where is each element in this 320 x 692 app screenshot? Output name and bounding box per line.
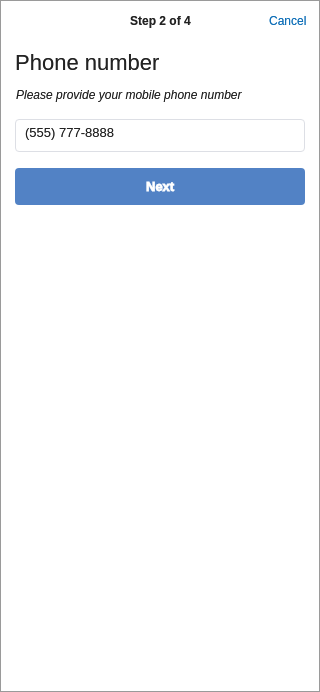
staticText: Next xyxy=(146,179,175,194)
staticText: Phone number xyxy=(15,50,160,75)
staticText: (555) 777-8888 xyxy=(25,125,114,140)
staticText: Cancel xyxy=(269,14,307,27)
button[interactable]: Cancel xyxy=(254,4,320,37)
button[interactable]: Next xyxy=(15,168,305,205)
staticText: Please provide your mobile phone number xyxy=(16,88,242,101)
staticText: Step 2 of 4 xyxy=(130,14,191,27)
staticText: (555) 777-8888 xyxy=(25,125,114,140)
staticText: Cancel xyxy=(269,14,307,27)
button[interactable]: (555) 777-8888 xyxy=(15,119,305,152)
staticText: Step 2 of 4 xyxy=(130,14,191,27)
staticText: Phone number xyxy=(15,50,160,75)
staticText: Please provide your mobile phone number xyxy=(16,88,242,101)
